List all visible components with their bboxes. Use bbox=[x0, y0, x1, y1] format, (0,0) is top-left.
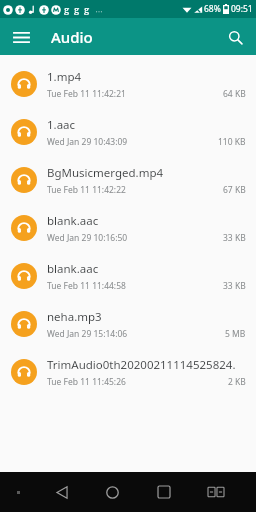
staticText: Tue Feb 11 11:42:22 bbox=[47, 184, 126, 196]
staticText: 110 KB bbox=[218, 136, 246, 148]
button[interactable]: Split screen bbox=[190, 472, 242, 512]
staticText: blank.aac bbox=[47, 213, 99, 229]
staticText: 1.aac bbox=[47, 117, 76, 133]
staticText: Wed Jan 29 10:16:50 bbox=[47, 232, 128, 244]
staticText: Audio bbox=[51, 27, 93, 47]
staticText: 64 KB bbox=[223, 88, 246, 100]
button[interactable]: Back bbox=[36, 472, 87, 512]
button[interactable]: Open navigation menu bbox=[6, 22, 36, 52]
staticText: blank.aac bbox=[47, 261, 99, 277]
button[interactable]: TrimAudio0th20200211114525824. bbox=[0, 348, 256, 396]
staticText: 1.mp4 bbox=[47, 69, 82, 85]
staticText: 33 KB bbox=[223, 280, 246, 292]
button[interactable]: Recent apps bbox=[138, 472, 190, 512]
button[interactable]: BgMusicmerged.mp4 bbox=[0, 156, 256, 204]
button[interactable]: 1.mp4 bbox=[0, 60, 256, 108]
button[interactable]: blank.aac bbox=[0, 252, 256, 300]
button[interactable]: Home bbox=[87, 472, 138, 512]
staticText: Tue Feb 11 11:44:58 bbox=[47, 280, 126, 292]
staticText: 68% bbox=[204, 3, 221, 15]
staticText: 2 KB bbox=[228, 376, 246, 388]
staticText: Wed Jan 29 15:14:06 bbox=[47, 328, 128, 340]
staticText: neha.mp3 bbox=[47, 309, 102, 325]
staticText: g bbox=[64, 3, 70, 16]
staticText: 09:51 bbox=[231, 3, 253, 15]
button[interactable]: neha.mp3 bbox=[0, 300, 256, 348]
staticText: Tue Feb 11 11:45:26 bbox=[47, 376, 126, 388]
staticText: g bbox=[84, 3, 90, 16]
staticText: BgMusicmerged.mp4 bbox=[47, 165, 164, 181]
staticText: 5 MB bbox=[225, 328, 246, 340]
staticText: TrimAudio0th20200211114525824. bbox=[47, 357, 236, 373]
staticText: Wed Jan 29 10:43:09 bbox=[47, 136, 128, 148]
staticText: g bbox=[74, 3, 80, 16]
staticText: Tue Feb 11 11:42:21 bbox=[47, 88, 126, 100]
button[interactable]: 1.aac bbox=[0, 108, 256, 156]
staticText: 33 KB bbox=[223, 232, 246, 244]
button[interactable]: Notification dot bbox=[0, 472, 36, 512]
staticText: 67 KB bbox=[223, 184, 246, 196]
button[interactable]: blank.aac bbox=[0, 204, 256, 252]
button[interactable]: Search bbox=[220, 22, 250, 52]
